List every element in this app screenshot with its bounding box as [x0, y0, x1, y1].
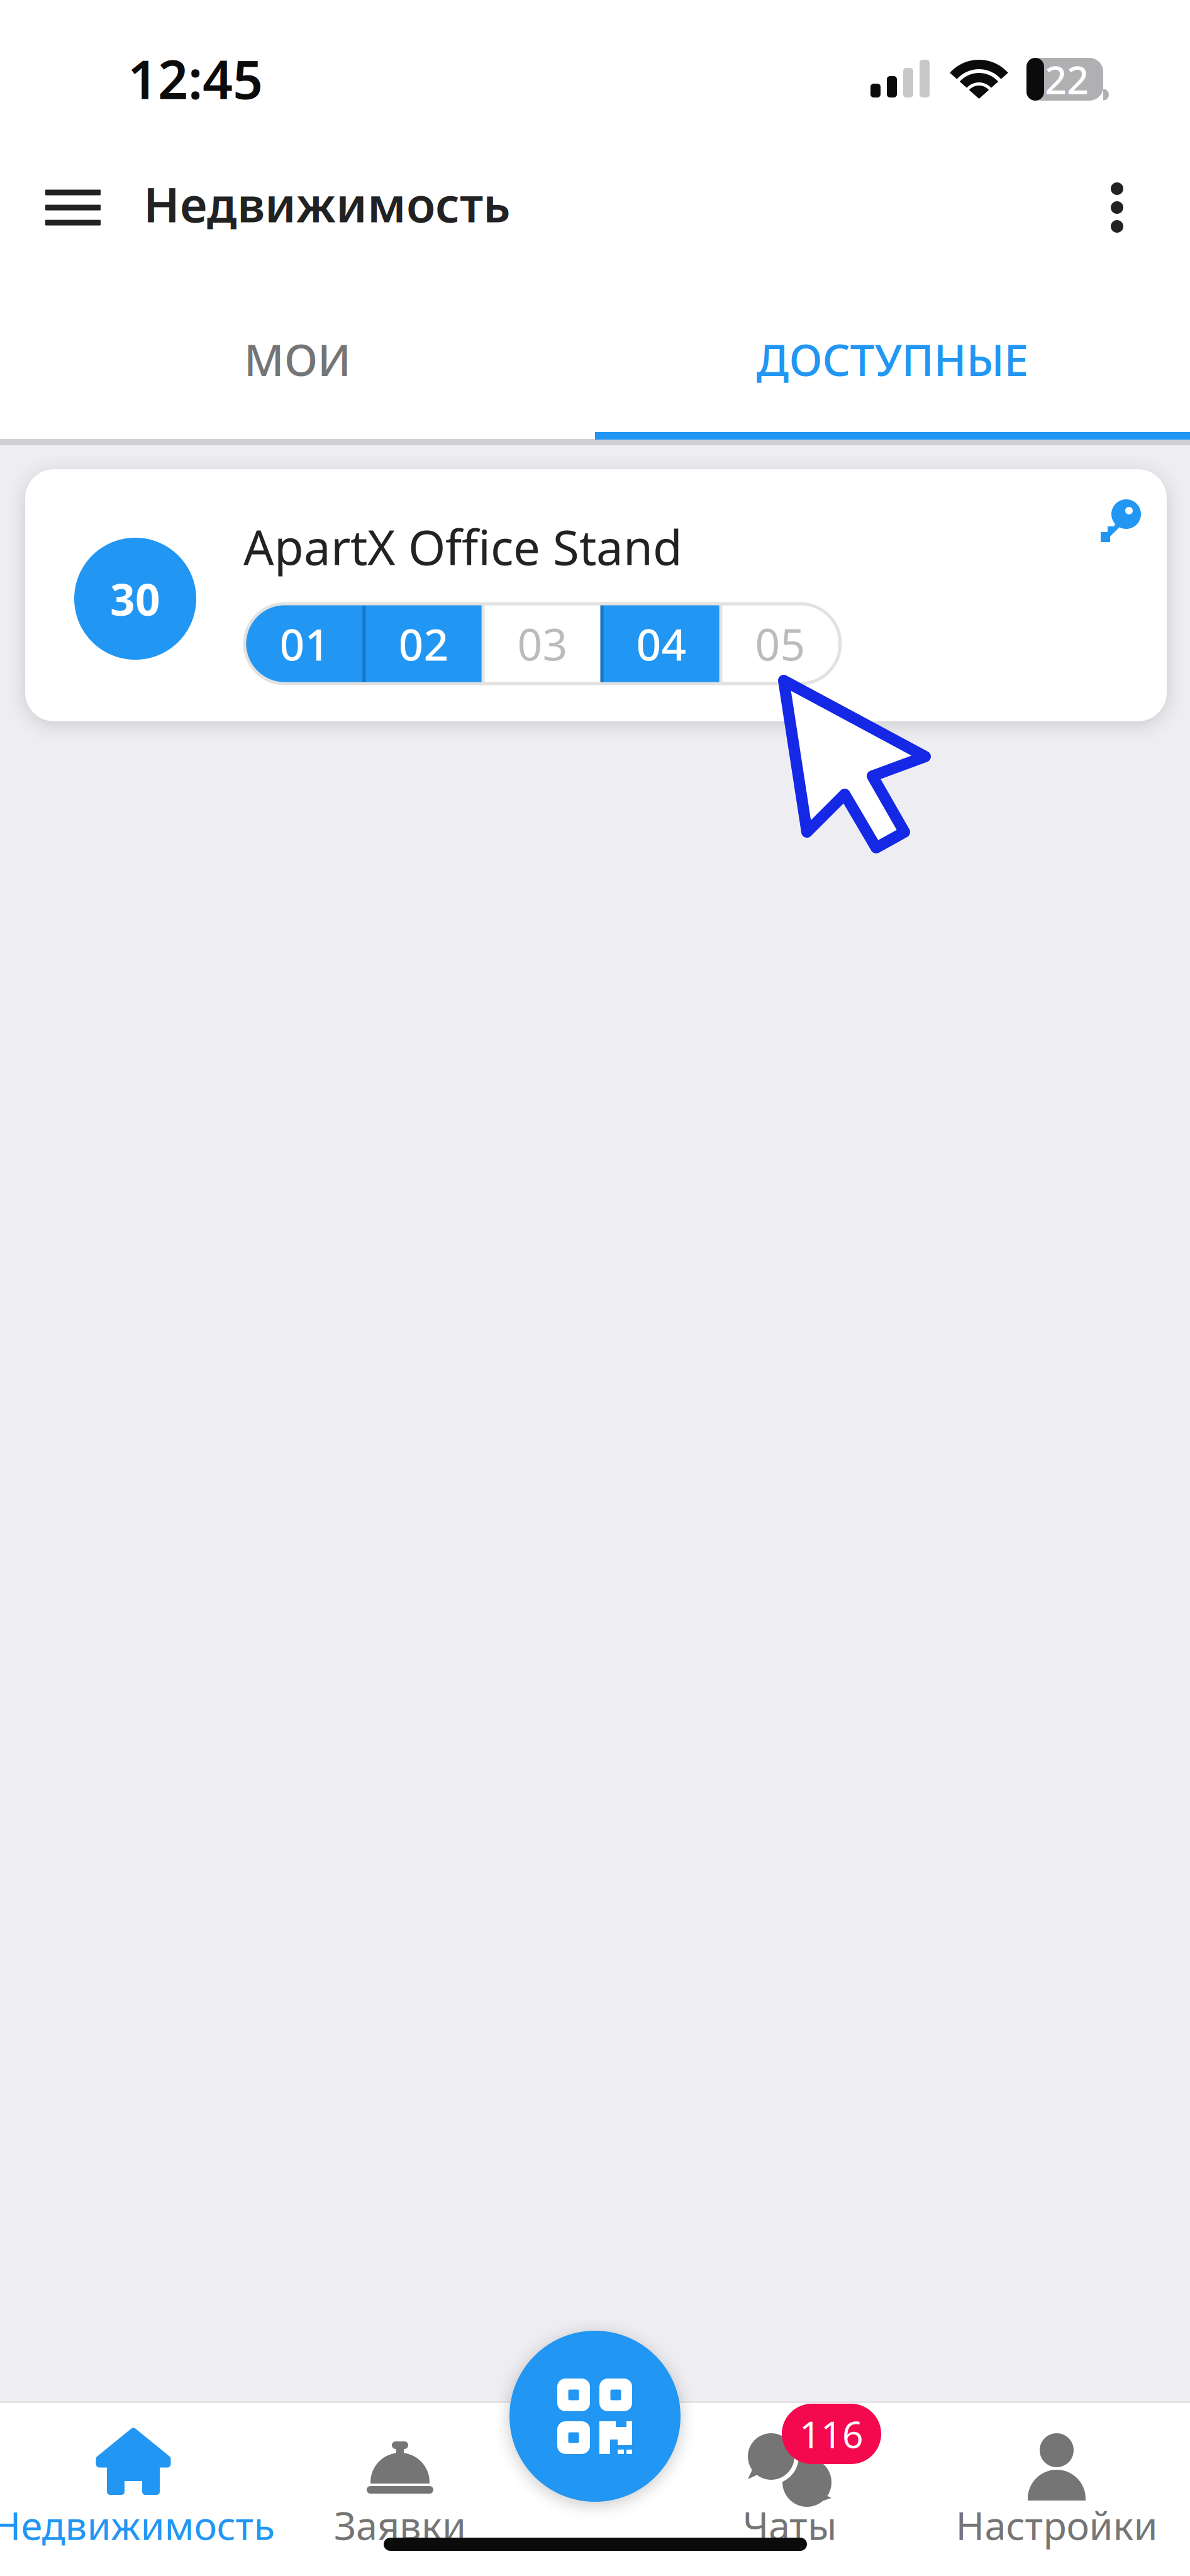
button[interactable]: More options	[1079, 167, 1155, 248]
staticText: 01	[280, 615, 330, 673]
staticText: Чаты	[743, 2499, 837, 2551]
staticText: МОИ	[244, 330, 351, 388]
staticText: 02	[398, 615, 449, 673]
staticText: 22	[1045, 54, 1089, 105]
staticText: 05	[755, 615, 805, 673]
staticText: 116	[799, 2409, 864, 2458]
button[interactable]: Недвижимость	[0, 2401, 267, 2576]
staticText: 04	[636, 615, 687, 673]
staticText: ApartX Office Stand	[243, 515, 682, 578]
button[interactable]: МОИ	[0, 301, 595, 418]
button[interactable]: 30	[25, 469, 1167, 721]
button[interactable]: Настройки	[923, 2401, 1190, 2576]
button[interactable]: Заявки	[267, 2401, 533, 2576]
button[interactable]: ДОСТУПНЫЕ	[595, 301, 1190, 418]
staticText: Настройки	[956, 2499, 1158, 2551]
staticText: 12:45	[128, 44, 263, 114]
staticText: Недвижимость	[143, 172, 511, 235]
staticText: Недвижимость	[0, 2499, 275, 2551]
staticText: ДОСТУПНЫЕ	[756, 330, 1029, 388]
staticText: Заявки	[334, 2499, 466, 2551]
button[interactable]: Scan QR code	[509, 2331, 681, 2502]
button[interactable]: Чаты	[657, 2401, 923, 2576]
button[interactable]: Menu	[32, 167, 114, 248]
staticText: 30	[110, 570, 160, 628]
staticText: 03	[517, 615, 568, 673]
